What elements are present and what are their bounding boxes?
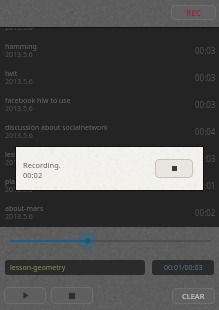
staticText: 00:04: [195, 126, 216, 137]
button[interactable]: Stop: [51, 287, 93, 304]
button[interactable]: Stop recording: [155, 159, 193, 178]
button[interactable]: lesson-geometry: [5, 260, 145, 275]
staticText: 2013.5.6: [5, 104, 33, 114]
staticText: 2013.5.6: [5, 158, 33, 168]
staticText: lesson-geometry: [10, 263, 66, 273]
staticText: 00:03: [195, 99, 216, 110]
button[interactable]: hamming: [0, 43, 219, 70]
staticText: 00:02: [23, 170, 43, 180]
staticText: 2013.5.6: [5, 23, 33, 33]
staticText: lesson-geometry: [5, 150, 176, 160]
staticText: 2013.5.6: [5, 77, 33, 87]
staticText: 2013.5.6: [5, 185, 33, 195]
staticText: REC: [186, 7, 201, 18]
staticText: twit: [5, 69, 176, 79]
staticText: discussion about socialnetwork: [5, 123, 176, 133]
staticText: play: [5, 177, 176, 187]
staticText: 00:01/00:03: [164, 263, 203, 273]
button[interactable]: twit: [0, 70, 219, 97]
button[interactable]: lesson-geometry: [0, 151, 219, 178]
staticText: 00:03: [195, 153, 216, 164]
staticText: 00:03: [195, 18, 216, 29]
staticText: 00:03: [195, 45, 216, 56]
staticText: 2013.5.6: [5, 212, 33, 222]
button[interactable]: facebook hiw to use: [0, 97, 219, 124]
button[interactable]: play: [0, 178, 219, 205]
staticText: 2013.5.6: [5, 131, 33, 141]
button[interactable]: sun-rise: [0, 16, 219, 43]
button[interactable]: Play: [4, 287, 46, 304]
staticText: 00:02: [195, 207, 216, 218]
staticText: 00:01: [195, 180, 216, 191]
staticText: hamming: [5, 42, 176, 52]
staticText: about-mars: [5, 204, 176, 214]
button[interactable]: REC: [171, 5, 216, 20]
staticText: 00:03: [195, 72, 216, 83]
staticText: facebook hiw to use: [5, 96, 176, 106]
button[interactable]: about-mars: [0, 205, 219, 232]
staticText: CLEAR: [182, 291, 205, 301]
button[interactable]: discussion about socialnetwork: [0, 124, 219, 151]
staticText: 2013.5.6: [5, 50, 33, 60]
button[interactable]: CLEAR: [172, 288, 215, 304]
staticText: Recording.: [23, 160, 61, 170]
